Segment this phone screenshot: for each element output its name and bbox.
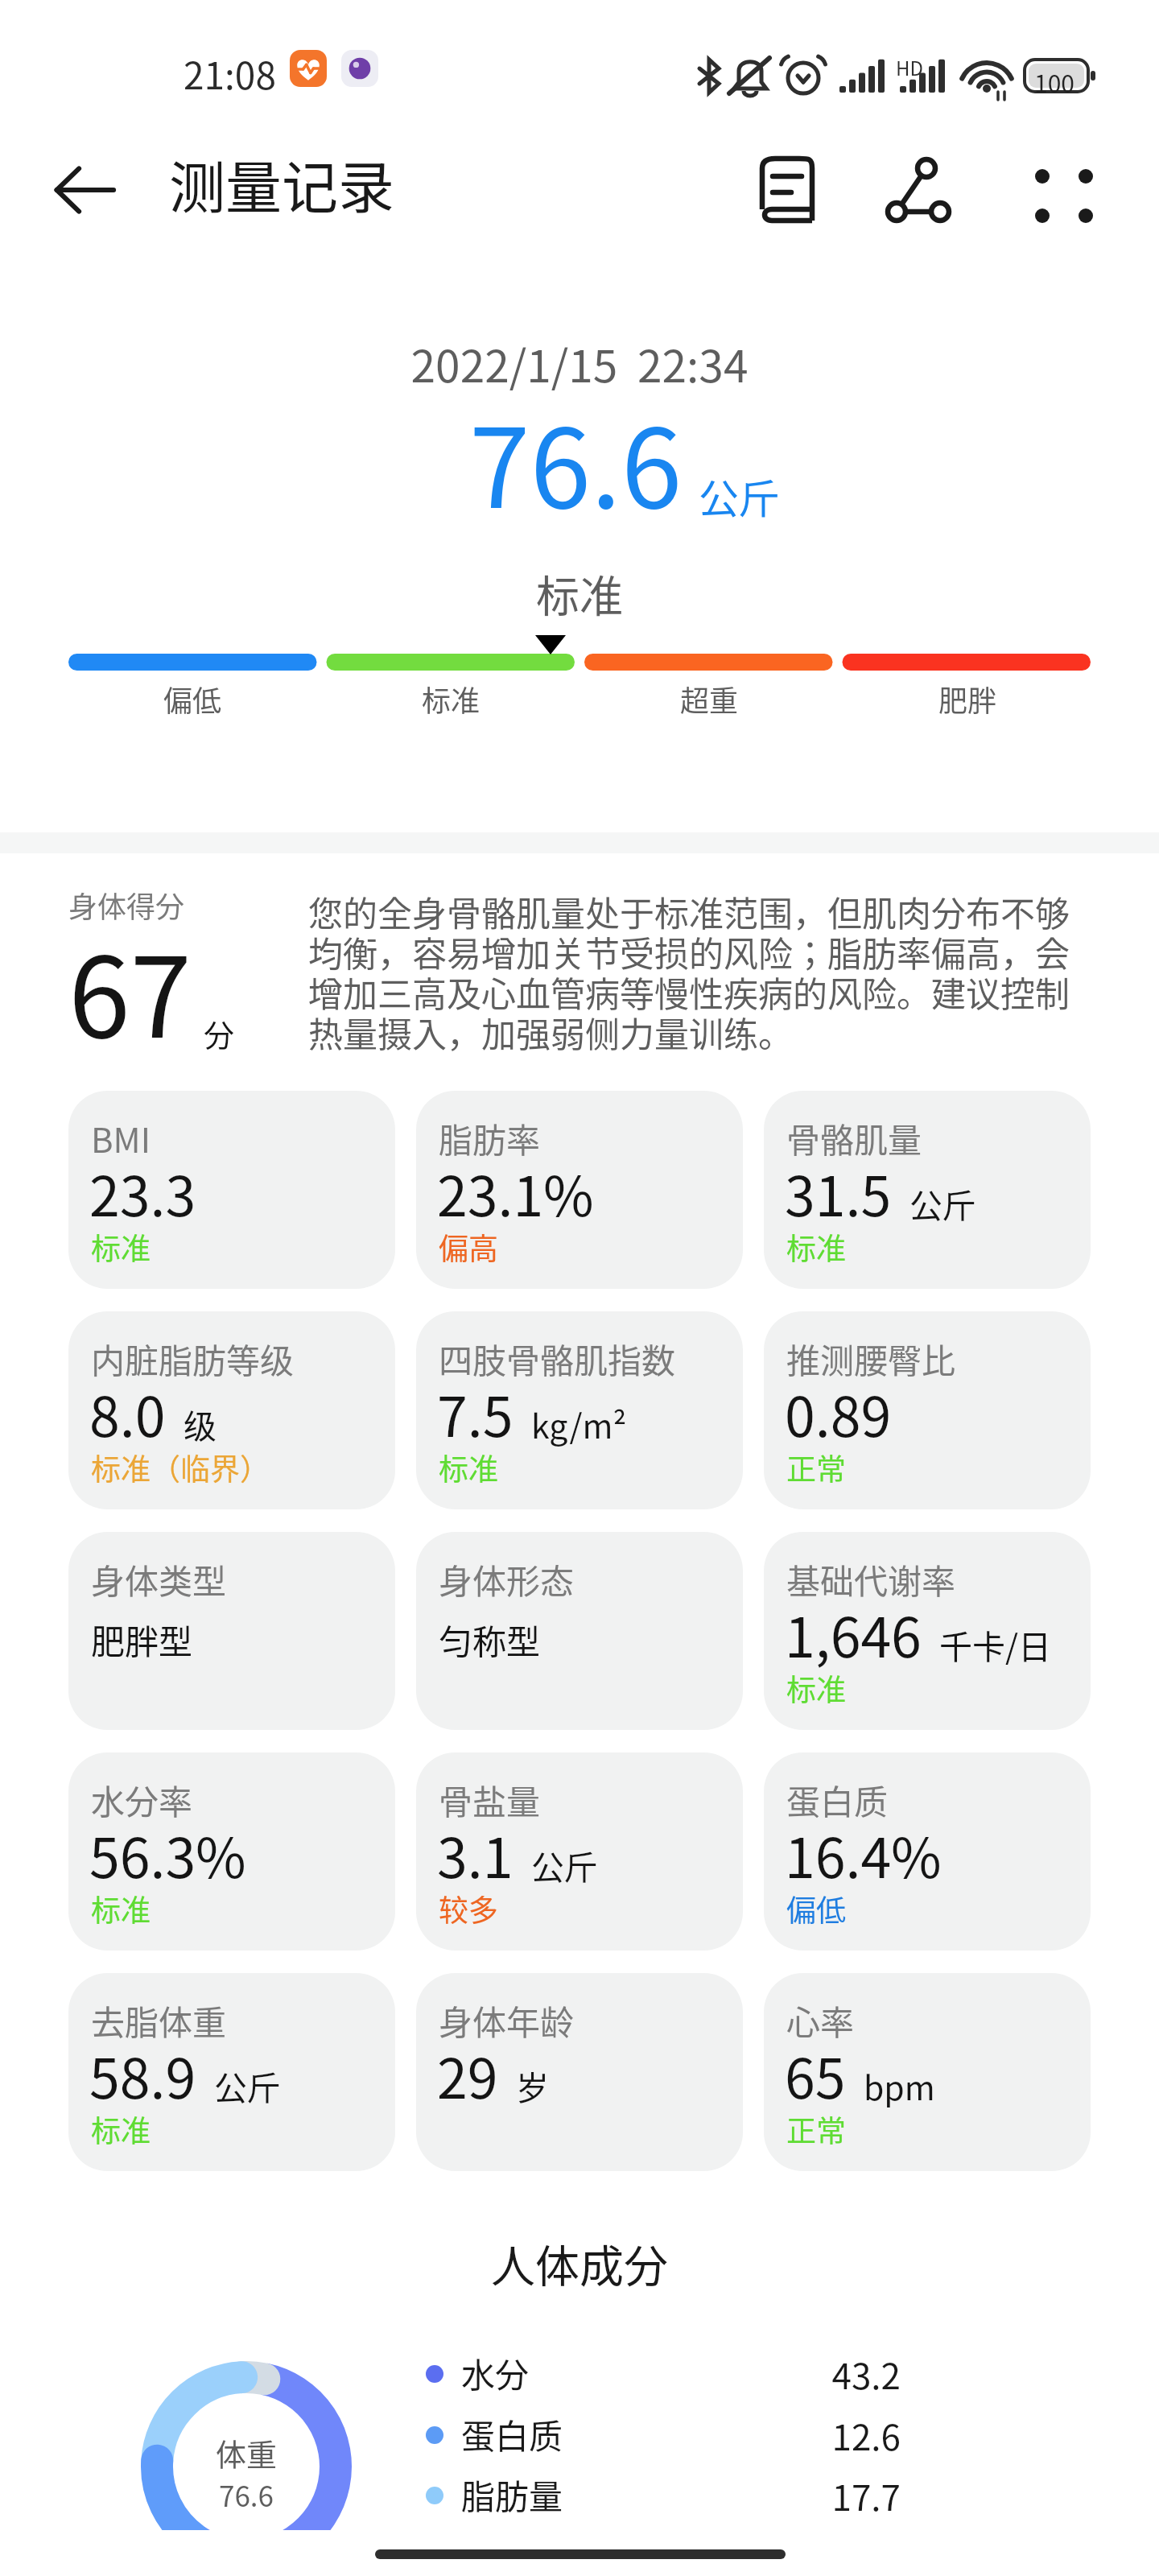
staticText: 内脏脂肪等级 [91,1334,295,1383]
button[interactable]: 身体形态 [416,1532,743,1730]
staticText: BMI [91,1113,151,1162]
staticText: 公斤 [909,1179,975,1227]
button[interactable]: 推测腰臀比 [764,1311,1091,1509]
staticText: 身体得分 [68,884,185,926]
staticText: 公斤 [531,1841,597,1889]
staticText: 测量记录 [169,143,394,225]
staticText: 标准 [786,1225,846,1269]
staticText: 身体形态 [439,1554,575,1604]
staticText: 标准 [91,1887,151,1930]
staticText: 正常 [786,2107,846,2151]
staticText: bpm [864,2062,935,2109]
staticText: 标准 [91,1225,151,1269]
staticText: 21:08 [184,47,276,101]
staticText: 岁 [516,2062,549,2109]
staticText: 去脂体重 [91,1996,227,2045]
staticText: 标准（临界） [91,1446,270,1489]
button[interactable]: 蛋白质 [764,1752,1091,1951]
button[interactable]: Share [882,154,963,234]
staticText: 76.6 [469,381,683,539]
button[interactable]: 去脂体重 [68,1973,395,2171]
button[interactable]: 水分率 [68,1752,395,1951]
staticText: 3.1 [437,1814,514,1893]
staticText: 标准 [786,1666,846,1710]
staticText: kg/m² [531,1400,627,1447]
staticText: 肥胖 [938,678,997,720]
staticText: 体重 [166,2430,327,2475]
staticText: 骨骼肌量 [786,1113,922,1162]
button[interactable]: 基础代谢率 [764,1532,1091,1730]
staticText: 水分率 [91,1775,193,1824]
staticText: 人体成分 [0,2231,1159,2295]
staticText: 蛋白质 [461,2409,563,2458]
staticText: 匀称型 [439,1615,541,1664]
staticText: 偏高 [439,1225,498,1269]
staticText: 43.2 [771,2348,901,2400]
button[interactable]: More options [1027,161,1091,225]
staticText: 蛋白质 [786,1775,889,1824]
button[interactable]: 蛋白质 [402,2405,934,2466]
button[interactable]: Back [50,155,119,225]
staticText: 56.3% [89,1814,246,1893]
staticText: 58.9 [89,2035,196,2114]
staticText: 0.89 [785,1373,892,1452]
button[interactable]: 脂肪率 [416,1091,743,1289]
staticText: 千卡/日 [939,1620,1052,1668]
staticText: 四肢骨骼肌指数 [439,1334,676,1383]
staticText: 偏低 [163,678,222,720]
staticText: 正常 [786,1446,846,1489]
staticText: 31.5 [785,1153,892,1232]
staticText: 偏低 [786,1887,846,1930]
button[interactable]: 水分 [402,2343,934,2405]
staticText: 16.4% [785,1814,942,1893]
staticText: 17.7 [771,2470,901,2521]
staticText: 脂肪率 [439,1113,541,1162]
staticText: 肥胖型 [91,1615,193,1664]
staticText: 23.3 [89,1153,196,1232]
staticText: 标准 [439,1446,498,1489]
staticText: 身体类型 [91,1554,227,1604]
button[interactable]: Report [749,151,829,231]
staticText: 推测腰臀比 [786,1334,956,1383]
staticText: 标准 [91,2107,151,2151]
staticText: 7.5 [437,1373,514,1452]
staticText: 公斤 [214,2062,280,2109]
button[interactable]: 身体年龄 [416,1973,743,2171]
staticText: 水分 [461,2348,530,2397]
staticText: 12.6 [771,2409,901,2461]
staticText: 标准 [422,678,481,720]
button[interactable]: 骨盐量 [416,1752,743,1951]
staticText: 8.0 [89,1373,166,1452]
staticText: 67 [68,909,192,1070]
button[interactable]: 身体类型 [68,1532,395,1730]
staticText: 级 [184,1400,217,1447]
staticText: 29 [437,2035,498,2114]
button[interactable]: 内脏脂肪等级 [68,1311,395,1509]
staticText: 脂肪量 [461,2470,563,2519]
staticText: 76.6 [166,2474,327,2515]
staticText: 超重 [680,678,739,720]
button[interactable]: 心率 [764,1973,1091,2171]
button[interactable]: 脂肪量 [402,2465,934,2526]
staticText: 65 [785,2035,846,2114]
staticText: 心率 [786,1996,855,2045]
staticText: 身体年龄 [439,1996,575,2045]
staticText: 公斤 [699,467,779,525]
staticText: 较多 [439,1887,498,1930]
staticText: 您的全身骨骼肌量处于标准范围，但肌肉分布不够 均衡，容易增加关节受损的风险；脂肪… [308,886,1089,1057]
button[interactable]: 骨骼肌量 [764,1091,1091,1289]
staticText: 23.1% [437,1153,594,1232]
staticText: HD [896,53,923,81]
staticText: 分 [204,1011,235,1055]
staticText: 1,646 [785,1594,922,1673]
staticText: 标准 [0,562,1159,625]
staticText: 100 [1034,64,1074,99]
staticText: 骨盐量 [439,1775,541,1824]
button[interactable]: BMI [68,1091,395,1289]
staticText: 基础代谢率 [786,1554,956,1604]
staticText: 2022/1/15 22:34 [0,331,1159,395]
button[interactable]: 四肢骨骼肌指数 [416,1311,743,1509]
